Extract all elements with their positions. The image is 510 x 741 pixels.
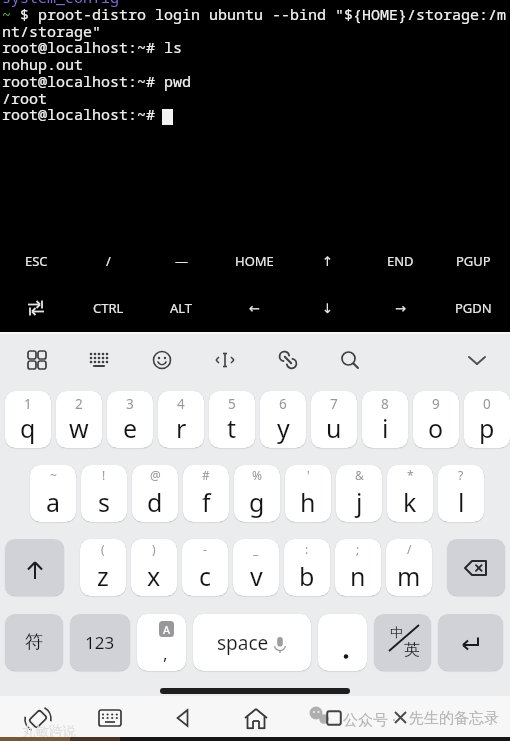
staticText: 123 xyxy=(85,631,115,654)
button[interactable]: 0 xyxy=(464,391,510,448)
button[interactable]: ↓ xyxy=(291,291,364,325)
button[interactable] xyxy=(272,344,304,376)
staticText: 5 xyxy=(228,395,236,413)
staticText: o xyxy=(428,411,444,445)
staticText: — xyxy=(175,252,189,270)
staticText: @ xyxy=(150,467,161,483)
staticText: w xyxy=(69,411,89,445)
button[interactable]: : xyxy=(284,539,330,596)
button[interactable] xyxy=(243,706,269,732)
button[interactable]: # xyxy=(183,465,229,522)
staticText: 公众号 · xyxy=(343,709,396,729)
button[interactable] xyxy=(5,539,64,596)
staticText: 0 xyxy=(483,395,491,413)
button[interactable] xyxy=(209,344,241,376)
staticText: m xyxy=(397,559,421,593)
staticText: f xyxy=(202,485,211,519)
button[interactable]: ; xyxy=(335,539,381,596)
button[interactable]: 3 xyxy=(107,391,153,448)
button[interactable] xyxy=(326,710,342,726)
staticText: - xyxy=(203,541,207,557)
button[interactable]: ! xyxy=(81,465,127,522)
staticText: i xyxy=(382,411,389,445)
staticText: e xyxy=(123,411,138,445)
staticText: g xyxy=(249,485,265,519)
staticText: , xyxy=(163,642,168,665)
staticText: nohup.out xyxy=(2,54,84,74)
staticText: ALT xyxy=(170,299,193,317)
button[interactable]: END xyxy=(364,244,437,278)
button[interactable]: ↑ xyxy=(291,244,364,278)
staticText: ~ xyxy=(2,4,12,24)
button[interactable]: — xyxy=(145,244,218,278)
button[interactable]: 符 xyxy=(5,614,63,671)
button[interactable]: ESC xyxy=(0,244,72,278)
button[interactable] xyxy=(461,344,493,376)
button[interactable]: space xyxy=(193,614,311,671)
button[interactable]: - xyxy=(182,539,228,596)
button[interactable] xyxy=(171,706,195,730)
button[interactable]: HOME xyxy=(218,244,291,278)
button[interactable]: 9 xyxy=(413,391,459,448)
staticText: b xyxy=(299,559,315,593)
staticText: 7 xyxy=(330,395,338,413)
staticText: % xyxy=(252,467,262,483)
staticText: / xyxy=(407,541,412,557)
staticText: ? xyxy=(458,467,464,483)
staticText: → xyxy=(395,301,406,316)
button[interactable] xyxy=(21,344,53,376)
button[interactable]: ) xyxy=(131,539,177,596)
button[interactable]: * xyxy=(387,465,433,522)
button[interactable]: _ xyxy=(233,539,279,596)
staticText: _ xyxy=(253,541,259,557)
button[interactable]: 4 xyxy=(158,391,204,448)
button[interactable]: 123 xyxy=(70,614,130,671)
staticText: space xyxy=(217,630,269,656)
button[interactable]: ← xyxy=(218,291,291,325)
button[interactable] xyxy=(0,291,72,325)
button[interactable]: ALT xyxy=(145,291,218,325)
staticText: ↓ xyxy=(322,301,333,316)
button[interactable]: @ xyxy=(132,465,178,522)
staticText: CTRL xyxy=(93,299,124,317)
button[interactable] xyxy=(438,614,503,671)
staticText: ( xyxy=(101,541,105,557)
button[interactable]: / xyxy=(386,539,432,596)
staticText: l xyxy=(458,485,465,519)
button[interactable]: ? xyxy=(438,465,484,522)
staticText: END xyxy=(387,252,414,270)
button[interactable]: PGDN xyxy=(437,291,510,325)
button[interactable]: → xyxy=(364,291,437,325)
button[interactable]: A xyxy=(137,614,186,671)
button[interactable]: 6 xyxy=(260,391,306,448)
button[interactable]: 1 xyxy=(5,391,51,448)
button[interactable]: 8 xyxy=(362,391,408,448)
staticText: ! xyxy=(102,467,106,483)
button[interactable]: PGUP xyxy=(437,244,510,278)
button[interactable]: 中 xyxy=(374,614,431,671)
button[interactable]: & xyxy=(336,465,382,522)
button[interactable] xyxy=(23,704,53,734)
button[interactable] xyxy=(146,344,178,376)
button[interactable]: % xyxy=(234,465,280,522)
button[interactable] xyxy=(318,614,367,671)
button[interactable]: 7 xyxy=(311,391,357,448)
button[interactable]: 5 xyxy=(209,391,255,448)
staticText: & xyxy=(355,467,364,483)
staticText: root@localhost:~# pwd xyxy=(2,71,192,91)
button[interactable] xyxy=(334,344,366,376)
button[interactable]: ( xyxy=(80,539,126,596)
staticText: s xyxy=(98,485,110,519)
button[interactable]: / xyxy=(72,244,145,278)
staticText: 4 xyxy=(177,395,185,413)
button[interactable] xyxy=(83,344,115,376)
button[interactable]: ~ xyxy=(30,465,76,522)
staticText: 英 xyxy=(404,640,420,660)
button[interactable] xyxy=(97,705,123,731)
staticText: root@localhost:~# ls xyxy=(2,37,183,57)
button[interactable] xyxy=(447,539,505,596)
button[interactable]: ' xyxy=(285,465,331,522)
button[interactable]: 2 xyxy=(56,391,102,448)
button[interactable]: CTRL xyxy=(72,291,145,325)
staticText: 符 xyxy=(25,631,43,654)
